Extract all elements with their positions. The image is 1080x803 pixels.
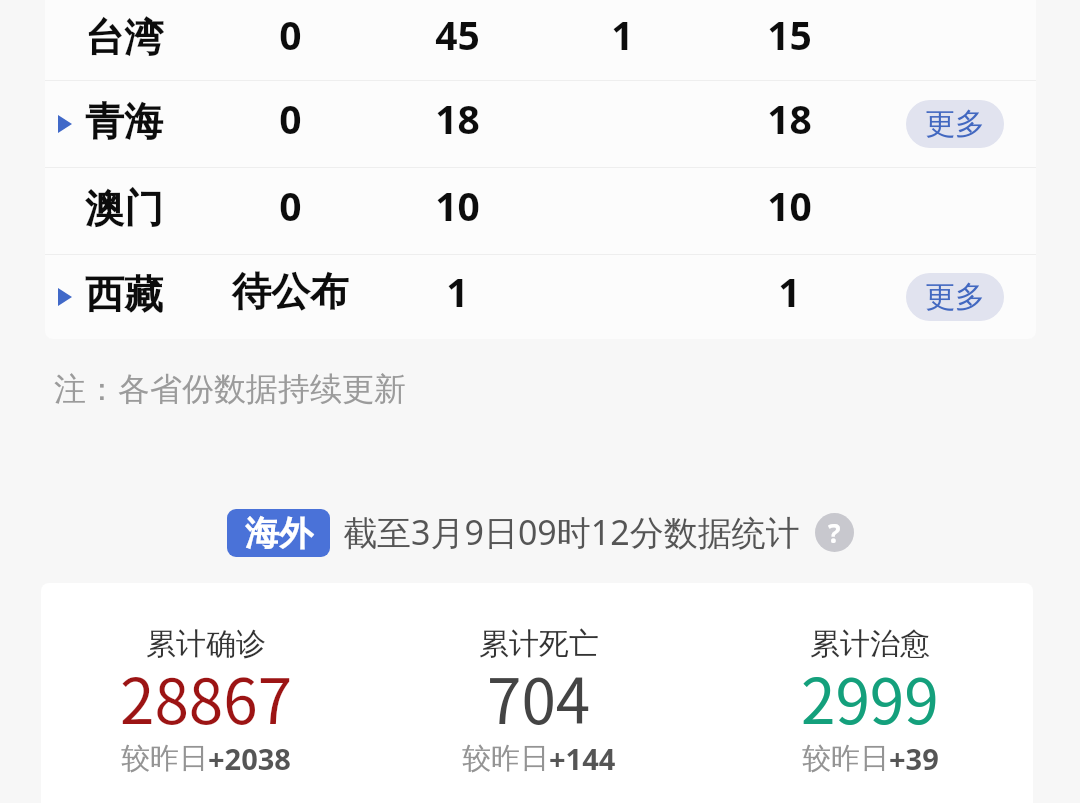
staticText: 0 [279,8,302,61]
button[interactable]: 更多 [906,273,1004,321]
staticText: 海外 [245,512,313,555]
staticText: 1 [446,265,469,318]
staticText: 累计死亡 [479,625,599,663]
staticText: 10 [767,179,812,232]
staticText: 18 [767,92,812,145]
staticText: ? [828,515,841,550]
staticText: 704 [487,652,591,742]
staticText: 西藏 [85,270,163,319]
staticText: 更多 [925,278,985,316]
button[interactable]: 更多 [906,100,1004,148]
button[interactable]: 海外 [227,509,330,557]
staticText: 待公布 [232,267,349,316]
staticText: 台湾 [85,13,163,62]
staticText: +2038 [208,739,291,778]
staticText: 45 [435,8,480,61]
button[interactable]: 台湾 [45,0,1036,80]
staticText: 较昨日 [802,740,889,777]
button[interactable]: 累计确诊 [41,597,381,789]
button[interactable]: Help [815,513,854,552]
staticText: 较昨日 [121,740,208,777]
staticText: +144 [549,739,616,778]
button[interactable]: 累计治愈 [695,597,1033,789]
staticText: 1 [778,265,801,318]
staticText: 10 [435,179,480,232]
staticText: 0 [279,92,302,145]
button[interactable]: 青海 [45,81,1036,167]
staticText: 更多 [925,105,985,143]
staticText: 累计确诊 [146,625,266,663]
button[interactable]: 西藏 [45,255,1036,339]
staticText: 截至3月9日09时12分数据统计 [343,509,800,555]
staticText: 较昨日 [462,740,549,777]
staticText: 0 [279,179,302,232]
staticText: 28867 [120,652,293,742]
staticText: 青海 [85,97,163,146]
staticText: 累计治愈 [810,625,930,663]
button[interactable]: 累计死亡 [364,597,714,789]
staticText: 15 [767,8,812,61]
staticText: 1 [611,8,634,61]
staticText: 注：各省份数据持续更新 [54,369,406,409]
staticText: +39 [889,739,939,778]
staticText: 2999 [801,652,939,742]
button[interactable]: 澳门 [45,168,1036,254]
staticText: 18 [435,92,480,145]
staticText: 澳门 [85,184,163,233]
